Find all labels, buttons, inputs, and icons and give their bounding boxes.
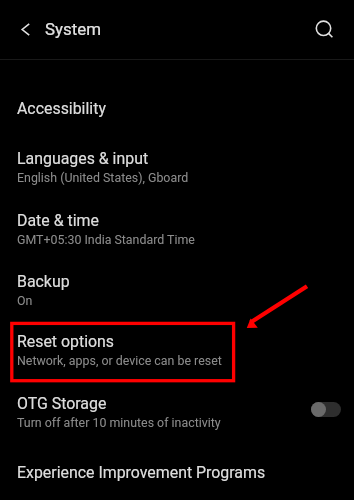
button[interactable]: Date & time	[0, 199, 354, 258]
button[interactable]: Languages & input	[0, 137, 354, 196]
button[interactable]: Back	[5, 9, 45, 49]
button[interactable]: OTG Storage	[0, 382, 354, 441]
staticText: Languages & input	[17, 149, 149, 168]
button[interactable]: OTG Storage toggle	[311, 397, 341, 421]
staticText: Backup	[17, 272, 70, 291]
staticText: GMT+05:30 India Standard Time	[17, 232, 195, 247]
staticText: Network, apps, or device can be reset	[17, 353, 222, 368]
staticText: OTG Storage	[17, 394, 107, 413]
staticText: Reset options	[17, 332, 115, 351]
button[interactable]: Search	[303, 9, 343, 49]
staticText: Turn off after 10 minutes of inactivity	[17, 415, 221, 430]
staticText: Accessibility	[17, 99, 106, 118]
button[interactable]: Accessibility	[0, 87, 354, 130]
button[interactable]: Experience Improvement Programs	[0, 451, 354, 494]
staticText: On	[17, 293, 33, 308]
staticText: Date & time	[17, 211, 99, 230]
staticText: Experience Improvement Programs	[17, 463, 266, 482]
staticText: English (United States), Gboard	[17, 170, 189, 185]
button[interactable]: Reset options	[0, 320, 354, 379]
staticText: System	[45, 19, 102, 39]
button[interactable]: Backup	[0, 260, 354, 319]
